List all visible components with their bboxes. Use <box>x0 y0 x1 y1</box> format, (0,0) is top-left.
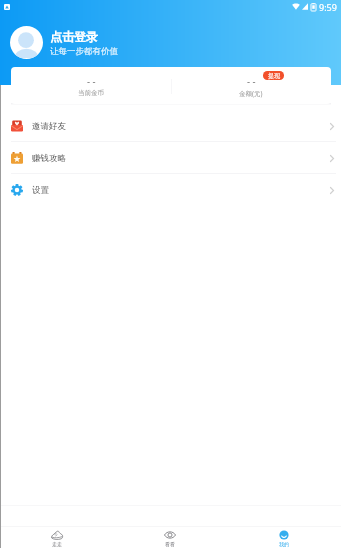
staticText: 点击登录 <box>50 29 98 44</box>
button[interactable]: 点击登录 <box>10 26 118 59</box>
button[interactable]: - - <box>171 67 331 104</box>
button[interactable]: 赚钱攻略 <box>0 142 341 174</box>
staticText: 走走 <box>52 541 62 547</box>
button[interactable]: 邀请好友 <box>0 110 341 142</box>
staticText: 设置 <box>32 185 49 196</box>
staticText: - - <box>247 75 256 88</box>
button[interactable]: 走走 <box>0 527 113 548</box>
button[interactable]: 我的 <box>227 527 341 548</box>
button[interactable]: 提现 <box>263 71 284 80</box>
staticText: 赚钱攻略 <box>32 153 66 164</box>
staticText: 我的 <box>279 541 289 547</box>
staticText: - - <box>87 75 96 88</box>
staticText: 提现 <box>268 72 280 80</box>
staticText: 9:59 <box>319 1 337 13</box>
staticText: 看看 <box>165 541 175 547</box>
button[interactable]: - - <box>11 67 171 104</box>
staticText: 让每一步都有价值 <box>50 46 118 57</box>
staticText: 当前金币 <box>78 89 104 97</box>
staticText: 邀请好友 <box>32 121 66 132</box>
button[interactable]: 设置 <box>0 174 341 206</box>
staticText: 金额(元) <box>239 89 263 98</box>
button[interactable]: 看看 <box>113 527 227 548</box>
